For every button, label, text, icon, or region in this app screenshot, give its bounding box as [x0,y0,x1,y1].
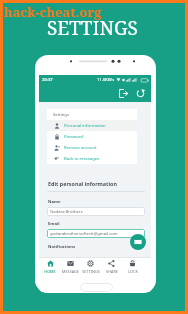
staticText: Remove account [64,145,97,151]
button[interactable]: Refresh [134,87,147,100]
staticText: hack-cheat.org [4,3,102,21]
staticText: LOCK [128,269,138,274]
staticText: HOME [44,269,56,274]
staticText: Settings [53,112,69,118]
staticText: 20:37 [42,77,53,83]
staticText: Password [64,134,83,140]
button[interactable]: Godara Brothers [47,207,145,216]
staticText: Godara Brothers [50,209,83,215]
button[interactable]: Remove account [47,142,137,153]
staticText: MESSAGE [62,269,79,274]
button[interactable]: Back to messages [47,153,137,164]
staticText: Email [48,221,60,227]
staticText: SHARE [106,269,118,274]
staticText: 11.6KB/s [97,77,115,83]
staticText: SETTINGS [47,15,138,41]
staticText: Notifications [48,244,76,250]
button[interactable]: HOME [40,258,60,278]
staticText: Name [48,199,61,205]
button[interactable]: LOCK [122,258,143,278]
staticText: godarabrothersoftech@gmail.com [50,231,118,237]
staticText: SETTINGS [82,269,100,274]
button[interactable]: MESSAGE [60,258,80,278]
staticText: Back to messages [64,156,100,162]
button[interactable]: godarabrothersoftech@gmail.com [47,229,145,238]
button[interactable]: Log out [117,87,130,100]
button[interactable]: Personal information [47,120,137,131]
button[interactable]: SHARE [101,258,122,278]
button[interactable]: Send email [130,234,146,250]
staticText: Edit personal information [48,180,117,187]
button[interactable]: Password [47,131,137,142]
staticText: Personal information [64,123,106,129]
button[interactable]: SETTINGS [80,258,101,278]
